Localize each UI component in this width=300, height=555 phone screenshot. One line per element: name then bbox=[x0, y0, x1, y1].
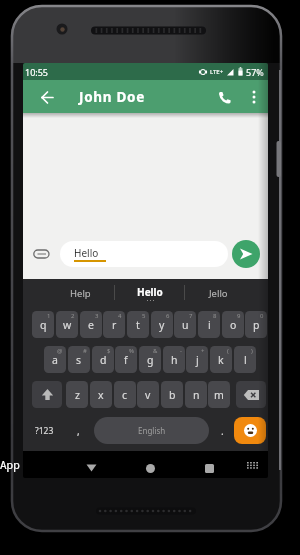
button[interactable] bbox=[209, 82, 239, 112]
staticText: 2 bbox=[71, 312, 75, 320]
staticText: % bbox=[129, 347, 134, 355]
button[interactable] bbox=[244, 457, 262, 475]
staticText: LTE+ bbox=[210, 68, 224, 76]
button[interactable]: , bbox=[68, 417, 88, 444]
button[interactable] bbox=[234, 417, 266, 444]
staticText: # bbox=[83, 347, 87, 355]
staticText: 57% bbox=[246, 66, 264, 78]
button[interactable]: Jello bbox=[184, 279, 252, 307]
staticText: y bbox=[159, 318, 165, 332]
button[interactable]: l bbox=[234, 346, 256, 373]
staticText: g bbox=[147, 353, 154, 367]
staticText: . bbox=[221, 424, 224, 438]
staticText: e bbox=[88, 318, 94, 332]
staticText: i bbox=[208, 318, 211, 332]
staticText: p bbox=[253, 318, 260, 332]
staticText: @ bbox=[57, 347, 63, 355]
button[interactable]: h bbox=[163, 346, 185, 373]
button[interactable] bbox=[79, 456, 103, 478]
staticText: ?123 bbox=[35, 425, 54, 437]
button[interactable] bbox=[138, 456, 162, 478]
staticText: 0 bbox=[260, 312, 264, 320]
staticText: Hello bbox=[137, 285, 163, 299]
staticText: f bbox=[124, 353, 128, 367]
staticText: 8 bbox=[213, 312, 217, 320]
button[interactable]: s bbox=[68, 346, 90, 373]
button[interactable]: a bbox=[44, 346, 66, 373]
button[interactable]: m bbox=[208, 381, 230, 408]
staticText: b bbox=[169, 388, 176, 402]
button[interactable]: u bbox=[174, 311, 196, 338]
staticText: q bbox=[40, 318, 47, 332]
staticText: a bbox=[52, 353, 58, 367]
button[interactable]: j bbox=[186, 346, 208, 373]
button[interactable]: o bbox=[222, 311, 244, 338]
button[interactable]: ?123 bbox=[27, 417, 61, 444]
staticText: Help bbox=[70, 287, 91, 300]
button[interactable] bbox=[232, 240, 260, 268]
button[interactable]: c bbox=[114, 381, 136, 408]
staticText: 6 bbox=[166, 312, 170, 320]
button[interactable] bbox=[243, 82, 265, 112]
staticText: $ bbox=[107, 347, 111, 355]
staticText: ) bbox=[251, 347, 253, 355]
staticText: 9 bbox=[237, 312, 241, 320]
button[interactable]: p bbox=[245, 311, 267, 338]
button[interactable]: y bbox=[151, 311, 173, 338]
staticText: u bbox=[182, 318, 189, 332]
button[interactable]: q bbox=[32, 311, 54, 338]
button[interactable]: Help bbox=[46, 279, 114, 307]
staticText: v bbox=[145, 388, 151, 402]
staticText: h bbox=[171, 353, 178, 367]
staticText: 10:55 bbox=[25, 66, 49, 78]
button[interactable]: Hello bbox=[60, 241, 228, 267]
button[interactable]: e bbox=[80, 311, 102, 338]
button[interactable]: x bbox=[90, 381, 112, 408]
button[interactable]: g bbox=[139, 346, 161, 373]
staticText: English bbox=[138, 425, 166, 436]
button[interactable]: w bbox=[56, 311, 78, 338]
staticText: 5 bbox=[142, 312, 146, 320]
button[interactable]: . bbox=[212, 417, 232, 444]
staticText: j bbox=[196, 353, 199, 367]
button[interactable]: English bbox=[94, 417, 209, 444]
button[interactable]: d bbox=[92, 346, 114, 373]
staticText: , bbox=[77, 424, 80, 438]
staticText: c bbox=[122, 388, 128, 402]
staticText: t bbox=[136, 318, 140, 332]
staticText: 4 bbox=[118, 312, 122, 320]
button[interactable]: b bbox=[161, 381, 183, 408]
staticText: 7 bbox=[189, 312, 193, 320]
button[interactable] bbox=[197, 456, 221, 478]
button[interactable] bbox=[236, 381, 266, 408]
staticText: 1 bbox=[47, 312, 51, 320]
button[interactable]: i bbox=[198, 311, 220, 338]
staticText: 3 bbox=[95, 312, 99, 320]
staticText: Hello bbox=[74, 246, 99, 260]
staticText: d bbox=[100, 353, 107, 367]
staticText: m bbox=[214, 388, 224, 402]
staticText: k bbox=[218, 353, 224, 367]
button[interactable]: k bbox=[210, 346, 232, 373]
button[interactable] bbox=[32, 82, 62, 112]
staticText: z bbox=[75, 388, 80, 402]
button[interactable]: r bbox=[103, 311, 125, 338]
button[interactable]: f bbox=[115, 346, 137, 373]
button[interactable]: v bbox=[137, 381, 159, 408]
staticText: n bbox=[193, 388, 200, 402]
staticText: l bbox=[244, 353, 247, 367]
button[interactable]: Hello bbox=[116, 279, 184, 307]
button[interactable]: n bbox=[185, 381, 207, 408]
staticText: + bbox=[201, 347, 205, 355]
staticText: o bbox=[230, 318, 237, 332]
staticText: - bbox=[180, 347, 182, 355]
staticText: s bbox=[76, 353, 82, 367]
staticText: w bbox=[63, 318, 72, 332]
button[interactable] bbox=[32, 381, 62, 408]
staticText: x bbox=[98, 388, 104, 402]
staticText: r bbox=[112, 318, 117, 332]
button[interactable]: z bbox=[66, 381, 88, 408]
button[interactable]: t bbox=[127, 311, 149, 338]
button[interactable] bbox=[32, 245, 50, 263]
staticText: John Doe bbox=[79, 88, 145, 106]
